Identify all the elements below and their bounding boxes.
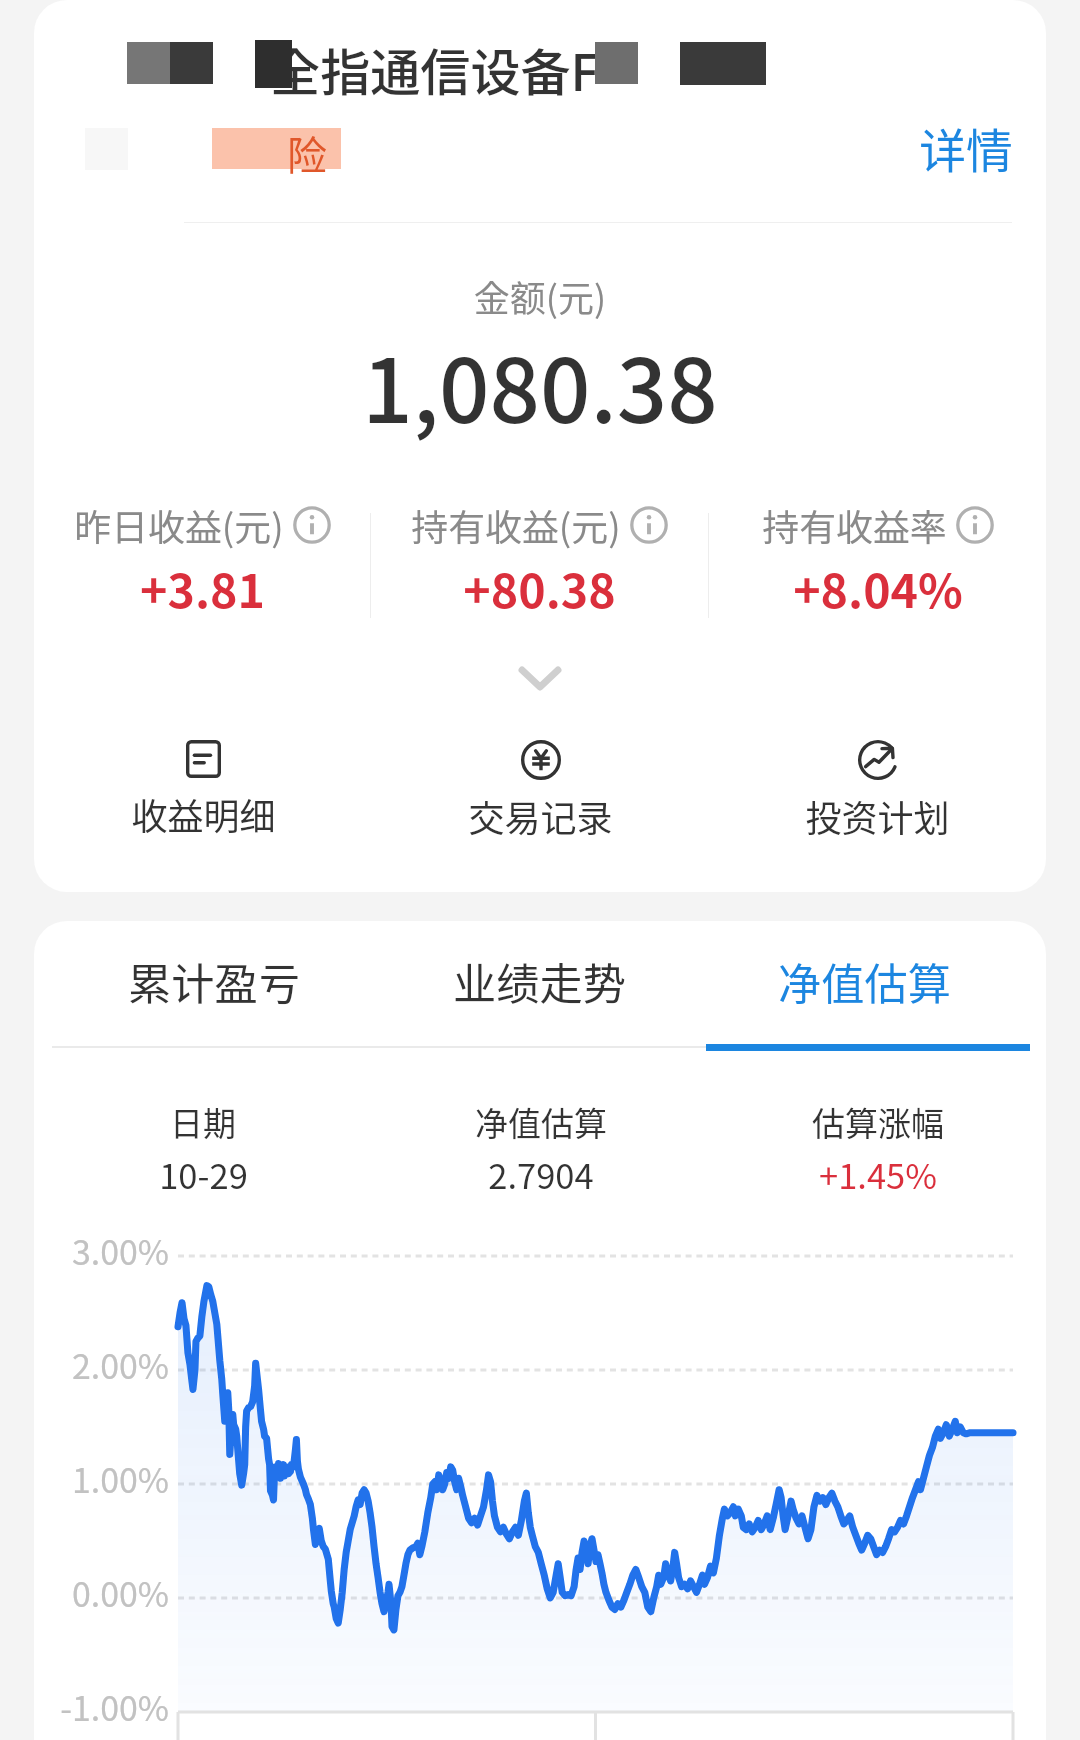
staticText: 0.00% — [34, 1568, 169, 1617]
staticText: 累计盈亏 — [128, 950, 301, 1013]
button[interactable]: 累计盈亏 — [51, 950, 377, 1013]
staticText: +80.38 — [463, 554, 616, 621]
staticText: 2.7904 — [488, 1149, 594, 1199]
staticText: 2.00% — [34, 1340, 169, 1389]
staticText: 10-29 — [159, 1149, 248, 1199]
staticText: 金额(元) — [34, 270, 1046, 322]
staticText: +1.45% — [819, 1149, 937, 1199]
button[interactable]: 交易记录 — [372, 740, 709, 842]
staticText: +8.04% — [793, 554, 963, 621]
staticText: 交易记录 — [468, 790, 613, 842]
staticText: 净值估算 — [475, 1098, 607, 1146]
button[interactable]: 昨日收益(元) — [34, 498, 370, 621]
button[interactable]: 业绩走势 — [377, 950, 702, 1013]
staticText: 业绩走势 — [453, 950, 626, 1013]
button[interactable]: 持有收益率 — [709, 498, 1046, 621]
staticText: 全指通信设备F — [270, 33, 599, 106]
staticText: +3.81 — [140, 554, 265, 621]
staticText: 持有收益(元) — [411, 498, 621, 551]
staticText: 日期 — [170, 1098, 236, 1146]
other: 收益明细 — [186, 740, 221, 778]
staticText: 昨日收益(元) — [74, 498, 284, 551]
button[interactable]: 收益明细 — [34, 740, 372, 840]
button[interactable]: 详情 — [904, 102, 1028, 194]
staticText: 收益明细 — [131, 788, 276, 840]
button[interactable]: 净值估算 — [702, 950, 1027, 1013]
staticText: 估算涨幅 — [812, 1098, 944, 1146]
staticText: 1,080.38 — [34, 320, 1046, 448]
staticText: 1.00% — [34, 1454, 169, 1503]
staticText: 净值估算 — [778, 950, 951, 1013]
button[interactable]: 投资计划 — [709, 740, 1046, 842]
staticText: 详情 — [919, 114, 1013, 182]
other: 交易记录 — [521, 740, 561, 780]
staticText: 投资计划 — [805, 790, 950, 842]
staticText: 险 — [287, 124, 327, 182]
other: 投资计划 — [858, 740, 898, 780]
staticText: 持有收益率 — [762, 498, 947, 551]
staticText: 3.00% — [34, 1226, 169, 1275]
staticText: -1.00% — [34, 1682, 169, 1731]
button[interactable]: 持有收益(元) — [371, 498, 708, 621]
